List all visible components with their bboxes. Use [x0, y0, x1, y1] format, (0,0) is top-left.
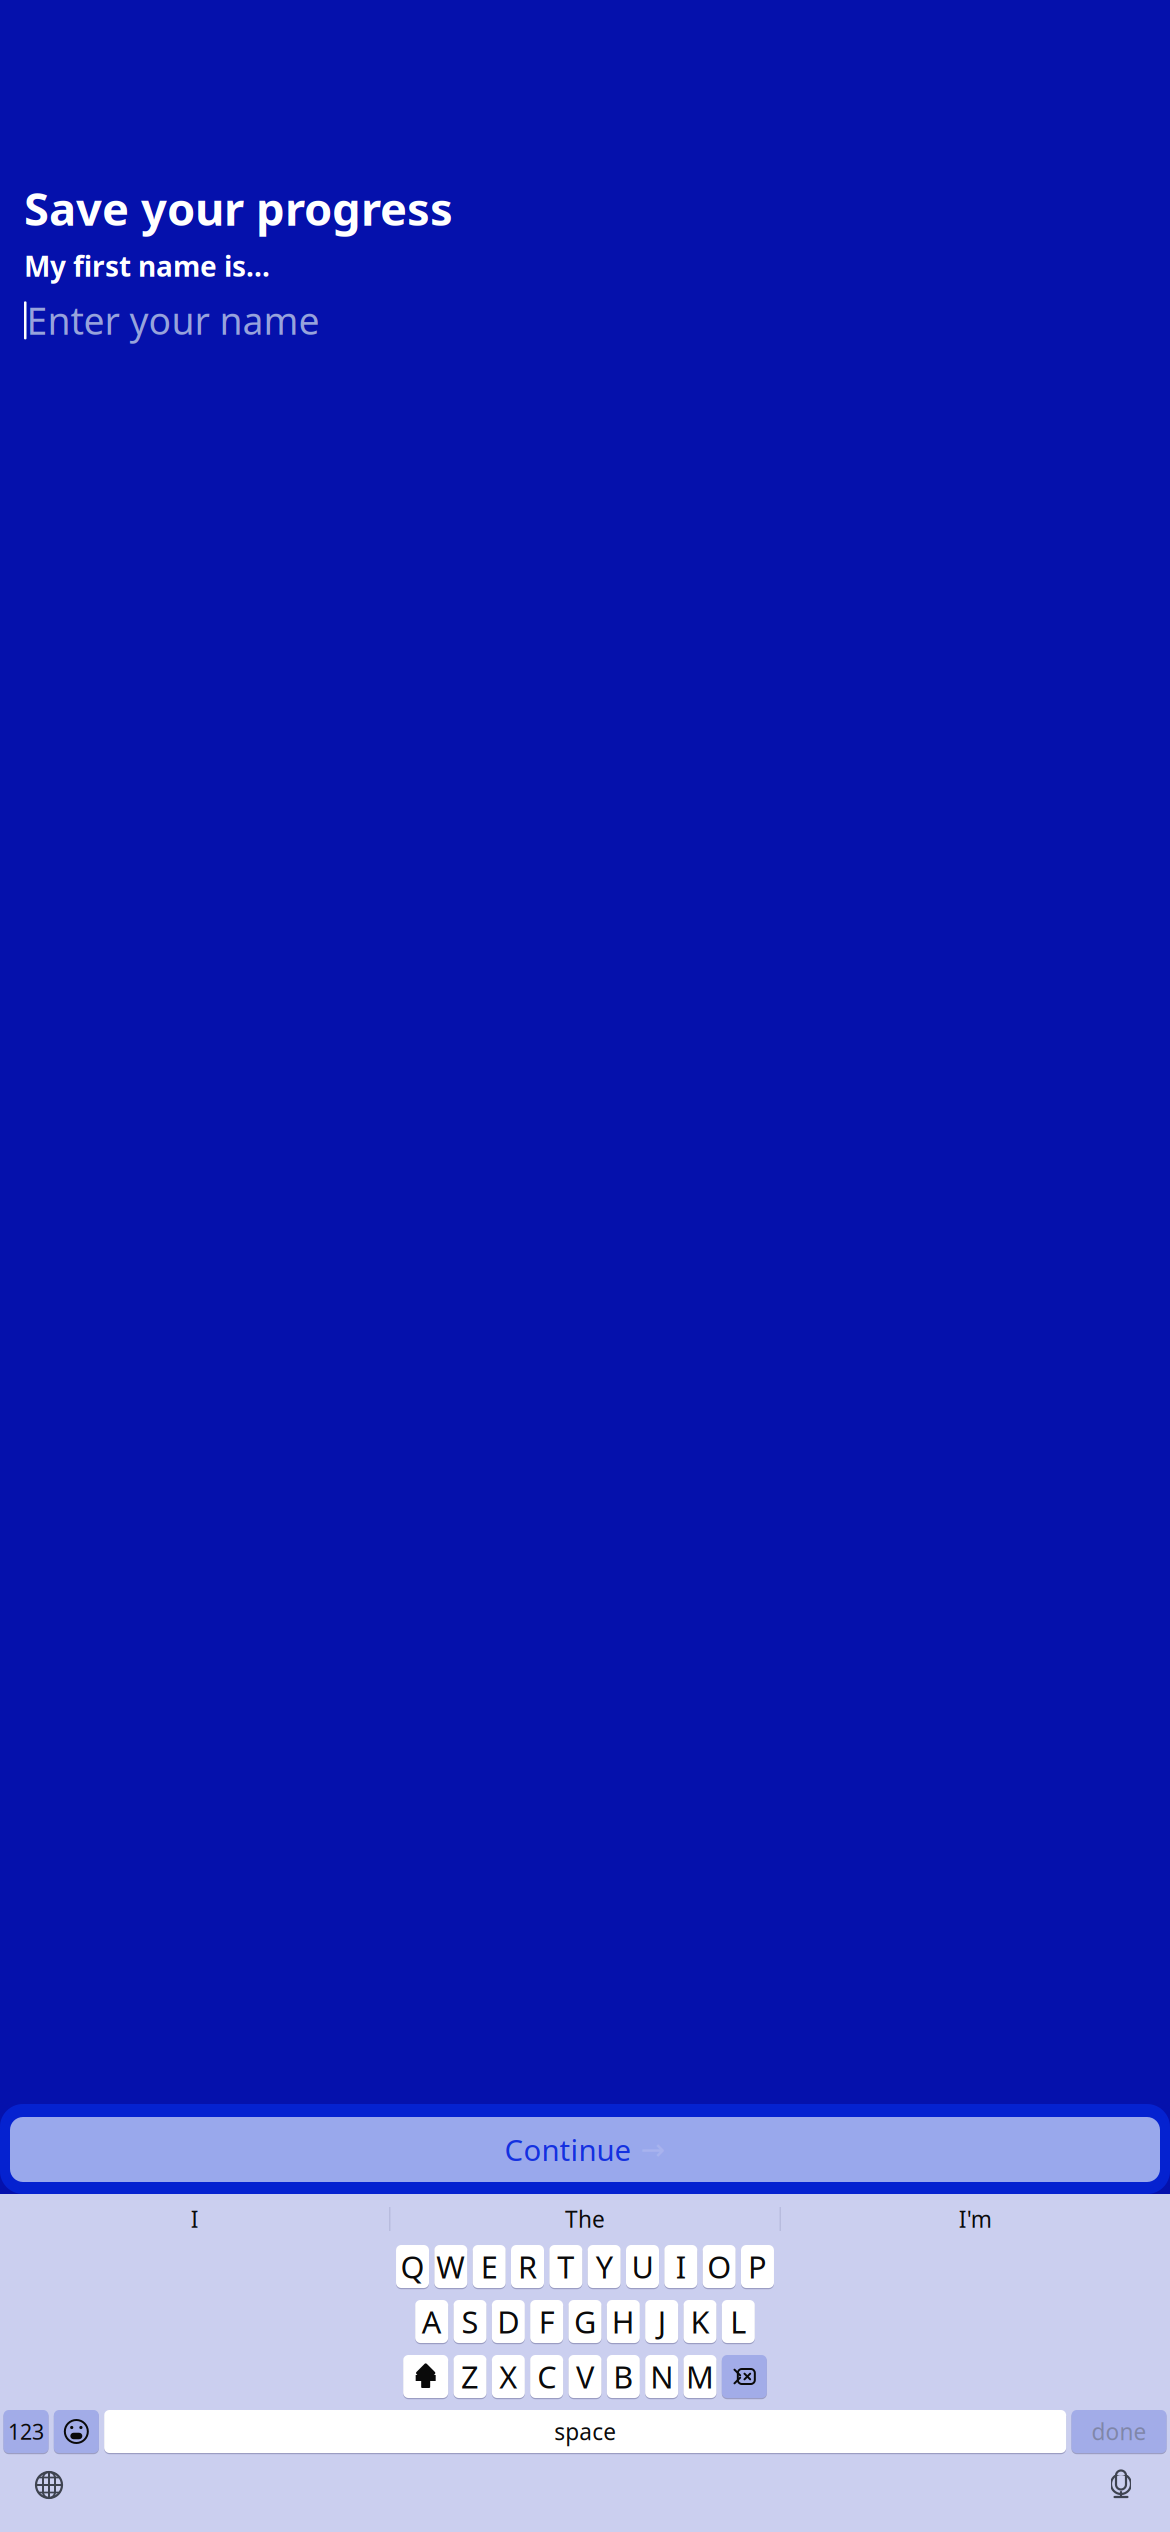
button[interactable]: N [645, 2354, 678, 2399]
button[interactable]: The [390, 2196, 780, 2241]
button[interactable]: R [511, 2244, 544, 2289]
button[interactable]: Shift [403, 2354, 448, 2399]
staticText: B [613, 2356, 633, 2397]
staticText: done [1091, 2416, 1146, 2446]
staticText: 123 [8, 2417, 44, 2446]
button[interactable]: Dictate [1095, 2463, 1147, 2507]
button[interactable]: C [530, 2354, 563, 2399]
button[interactable]: A [415, 2299, 448, 2344]
staticText: M [686, 2356, 714, 2397]
button[interactable]: L [722, 2299, 755, 2344]
staticText: D [497, 2301, 519, 2342]
staticText: V [576, 2356, 594, 2397]
button[interactable]: space [104, 2409, 1066, 2454]
button[interactable]: O [703, 2244, 736, 2289]
staticText: I'm [959, 2204, 992, 2234]
button[interactable]: V [568, 2354, 601, 2399]
staticText: R [518, 2246, 537, 2287]
button[interactable]: S [453, 2299, 486, 2344]
button[interactable]: Emoji [54, 2409, 99, 2454]
button[interactable]: D [492, 2299, 525, 2344]
button[interactable]: Q [396, 2244, 429, 2289]
button[interactable]: M [683, 2354, 716, 2399]
staticText: I [191, 2204, 199, 2234]
button[interactable]: U [626, 2244, 659, 2289]
button[interactable]: K [683, 2299, 716, 2344]
staticText: K [690, 2301, 709, 2342]
staticText: space [554, 2416, 616, 2446]
button[interactable]: P [741, 2244, 774, 2289]
button[interactable]: 123 [3, 2409, 48, 2454]
staticText: U [631, 2246, 653, 2287]
staticText: P [748, 2246, 767, 2287]
button[interactable]: done [1071, 2409, 1166, 2454]
button[interactable]: B [607, 2354, 640, 2399]
staticText: E [481, 2246, 498, 2287]
staticText: G [574, 2301, 596, 2342]
button[interactable]: Y [588, 2244, 621, 2289]
button[interactable]: E [473, 2244, 506, 2289]
staticText: T [557, 2246, 574, 2287]
staticText: Q [400, 2246, 424, 2287]
staticText: I [676, 2246, 686, 2287]
button[interactable]: X [492, 2354, 525, 2399]
staticText: Save your progress [24, 178, 453, 238]
button[interactable]: Delete [722, 2354, 767, 2399]
staticText: X [499, 2356, 517, 2397]
staticText: Y [596, 2246, 613, 2287]
staticText: Z [461, 2356, 479, 2397]
staticText: H [612, 2301, 635, 2342]
button[interactable]: I [664, 2244, 697, 2289]
staticText: → [640, 2133, 665, 2166]
staticText: S [461, 2301, 478, 2342]
staticText: J [658, 2301, 666, 2342]
staticText: Enter your name [26, 296, 319, 345]
staticText: A [422, 2301, 442, 2342]
button[interactable]: J [645, 2299, 678, 2344]
staticText: My first name is... [24, 247, 270, 284]
button[interactable]: Continue [10, 2117, 1160, 2182]
button[interactable]: G [568, 2299, 601, 2344]
button[interactable]: Next keyboard [23, 2463, 75, 2507]
button[interactable]: F [530, 2299, 563, 2344]
staticText: O [707, 2246, 731, 2287]
button[interactable]: T [549, 2244, 582, 2289]
button[interactable]: H [607, 2299, 640, 2344]
staticText: N [650, 2356, 673, 2397]
button[interactable]: W [434, 2244, 467, 2289]
button[interactable]: Z [453, 2354, 486, 2399]
staticText: Continue [504, 2130, 631, 2169]
staticText: W [436, 2246, 465, 2287]
staticText: C [537, 2356, 556, 2397]
staticText: F [539, 2301, 555, 2342]
button[interactable]: I [0, 2196, 389, 2241]
staticText: The [565, 2204, 605, 2234]
staticText: L [730, 2301, 746, 2342]
button[interactable]: I'm [780, 2196, 1170, 2241]
